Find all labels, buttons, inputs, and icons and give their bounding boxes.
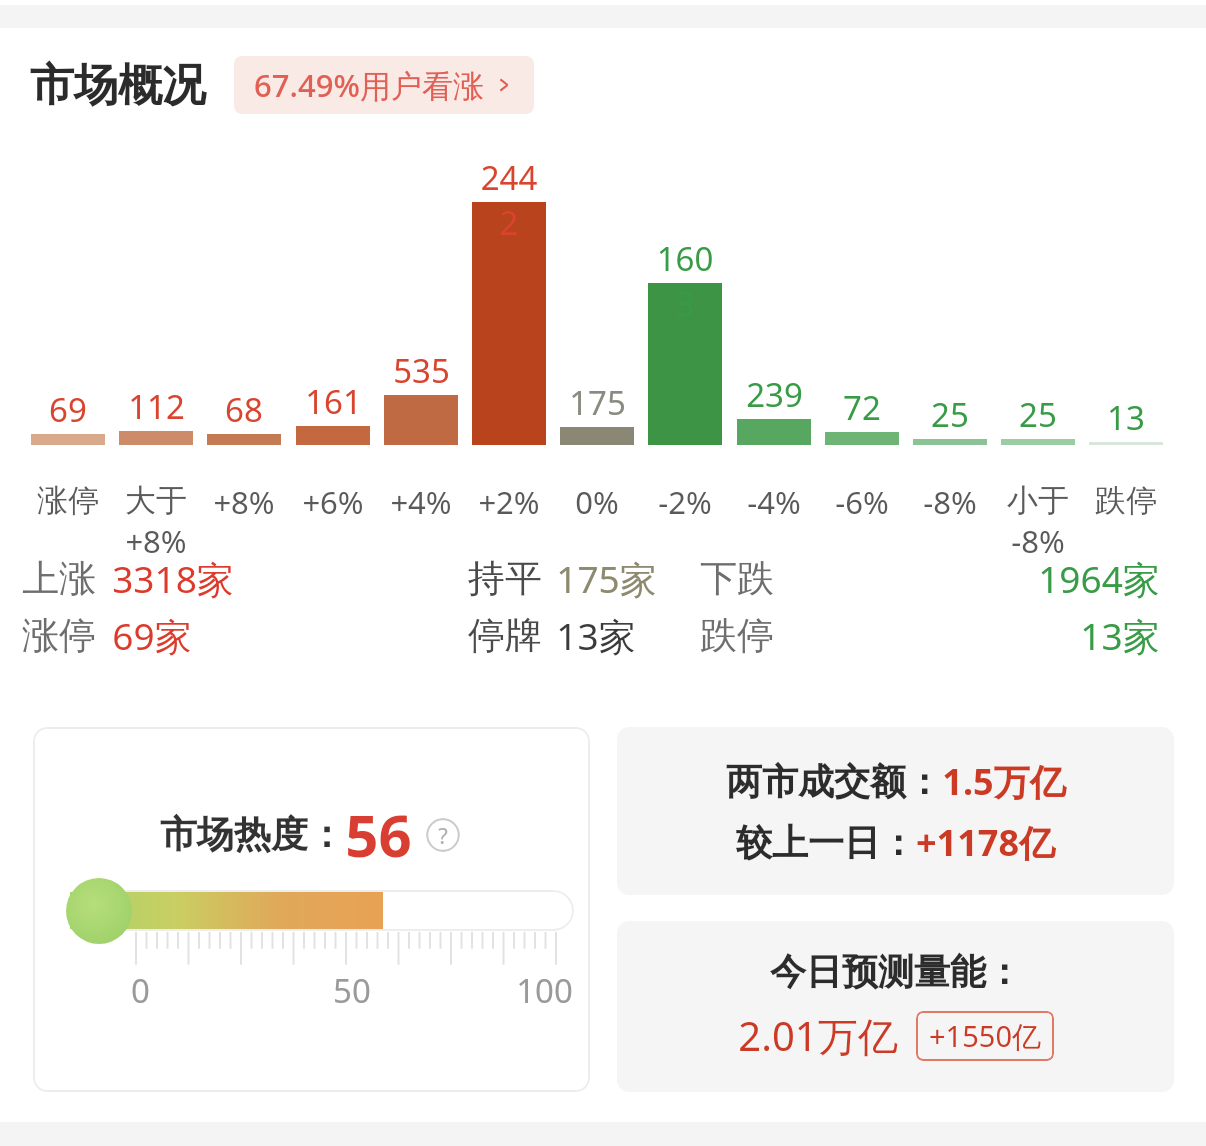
staticText: +2% xyxy=(478,481,540,523)
staticText: -8% xyxy=(1011,520,1065,562)
staticText: 跌停 xyxy=(700,612,774,659)
staticText: 67.49%用户看涨 xyxy=(254,64,484,106)
staticText: 1964家 xyxy=(1038,553,1160,604)
staticText: 25 xyxy=(931,392,969,437)
staticText: 涨停 xyxy=(37,481,99,520)
staticText: 72 xyxy=(843,385,881,430)
staticText: 停牌 xyxy=(468,612,542,659)
staticText: 25 xyxy=(1019,392,1057,437)
button[interactable]: 67.49%用户看涨 xyxy=(234,56,534,114)
staticText: +1178亿 xyxy=(916,818,1055,867)
staticText: +1550亿 xyxy=(929,1016,1041,1056)
staticText: +8% xyxy=(213,481,275,523)
staticText: 小于 xyxy=(1007,481,1069,520)
staticText: 13家 xyxy=(1080,610,1160,661)
staticText: 市场概况 xyxy=(30,58,206,113)
staticText: 持平 xyxy=(468,555,542,602)
staticText: 大于 xyxy=(125,481,187,520)
staticText: 两市成交额： xyxy=(726,759,942,804)
staticText: 112 xyxy=(128,384,185,429)
staticText: +8% xyxy=(125,520,187,562)
staticText: 13 xyxy=(1107,395,1145,440)
staticText: 69家 xyxy=(112,610,192,661)
staticText: 68 xyxy=(225,387,263,432)
staticText: -6% xyxy=(835,481,889,523)
button[interactable]: 今日预测量能： xyxy=(617,921,1174,1092)
staticText: 今日预测量能： xyxy=(770,949,1022,994)
staticText: 1.5万亿 xyxy=(942,757,1066,806)
staticText: -2% xyxy=(658,481,712,523)
staticText: 69 xyxy=(49,387,87,432)
staticText: 175 xyxy=(569,380,626,425)
staticText: 2.01万亿 xyxy=(738,1008,898,1063)
staticText: 2442 xyxy=(472,155,546,245)
staticText: 535 xyxy=(393,348,450,393)
staticText: 175家 xyxy=(556,553,657,604)
staticText: -4% xyxy=(747,481,801,523)
staticText: 上涨 xyxy=(22,555,96,602)
staticText: 市场热度： xyxy=(160,811,345,858)
staticText: +6% xyxy=(302,481,364,523)
staticText: 1603 xyxy=(648,236,722,326)
staticText: 跌停 xyxy=(1095,481,1157,520)
staticText: -8% xyxy=(923,481,977,523)
staticText: 239 xyxy=(746,372,803,417)
button[interactable]: 帮助 xyxy=(426,818,460,852)
staticText: 0% xyxy=(575,481,619,523)
staticText: 56 xyxy=(345,795,412,874)
staticText: ? xyxy=(438,820,448,850)
button[interactable]: 两市成交额： xyxy=(617,727,1174,895)
staticText: +4% xyxy=(390,481,452,523)
staticText: 100 xyxy=(516,968,573,1013)
button[interactable] xyxy=(33,727,590,1092)
staticText: 下跌 xyxy=(700,555,774,602)
staticText: 0 xyxy=(131,968,150,1013)
staticText: 161 xyxy=(305,379,362,424)
staticText: 13家 xyxy=(556,610,636,661)
staticText: 涨停 xyxy=(22,612,96,659)
staticText: 3318家 xyxy=(112,553,234,604)
staticText: 较上一日： xyxy=(736,820,916,865)
staticText: 50 xyxy=(333,968,371,1013)
